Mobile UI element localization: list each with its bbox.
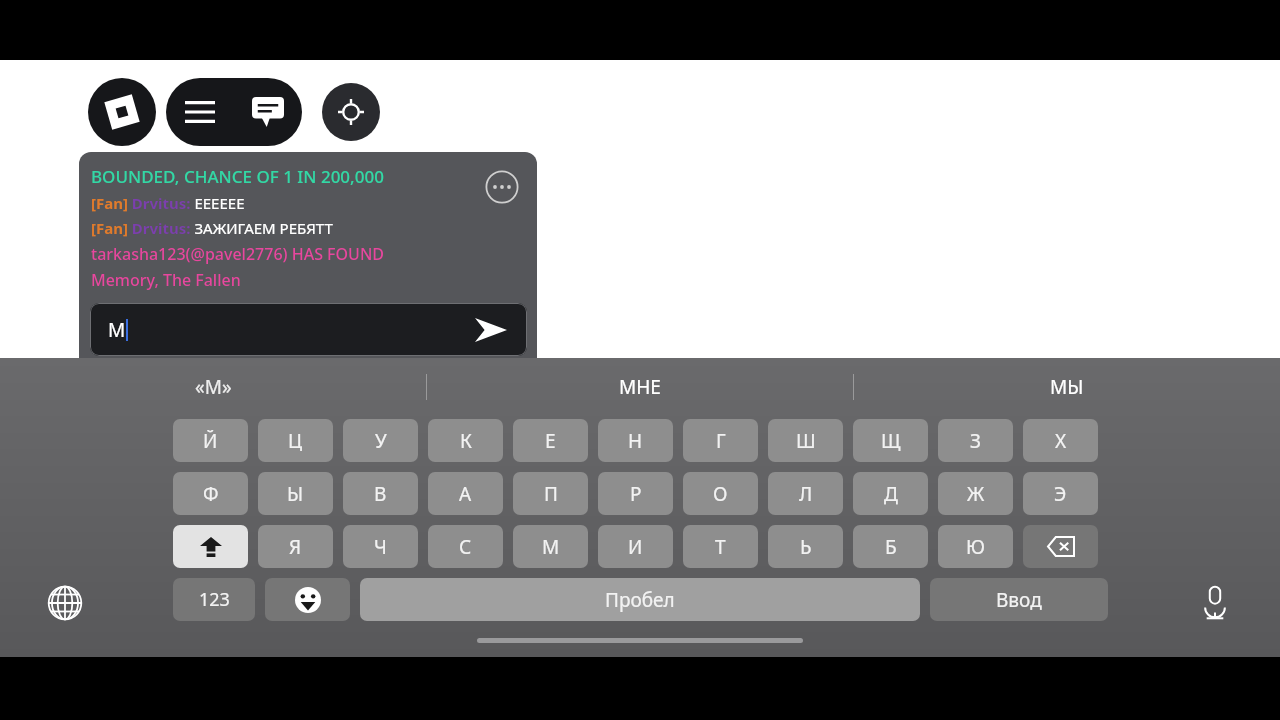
button[interactable]: «М» <box>0 358 426 416</box>
button[interactable]: МНЕ <box>427 358 853 416</box>
button[interactable]: Д <box>853 472 928 515</box>
button[interactable]: Voice input <box>1193 581 1237 625</box>
button[interactable]: П <box>513 472 588 515</box>
button[interactable]: МЫ <box>854 358 1280 416</box>
staticText: BOUNDED, CHANCE OF 1 IN 200,000 <box>91 165 384 188</box>
staticText: [Fan] Drvitus: EEEEEE <box>91 193 245 213</box>
button[interactable]: Chat <box>234 78 302 146</box>
staticText: Х <box>1055 428 1067 454</box>
button[interactable]: М <box>513 525 588 568</box>
button[interactable]: Х <box>1023 419 1098 462</box>
button[interactable]: Roblox menu <box>88 78 156 146</box>
staticText: О <box>713 481 728 507</box>
staticText: Я <box>289 534 302 560</box>
button[interactable]: M <box>90 303 527 356</box>
staticText: Н <box>628 428 643 454</box>
button[interactable]: Ф <box>173 472 248 515</box>
button[interactable]: Г <box>683 419 758 462</box>
staticText: Ввод <box>996 587 1042 613</box>
button[interactable]: З <box>938 419 1013 462</box>
staticText: А <box>459 481 472 507</box>
staticText: Ш <box>796 428 816 454</box>
staticText: Е <box>545 428 556 454</box>
button[interactable]: Ы <box>258 472 333 515</box>
staticText: МЫ <box>1050 374 1084 400</box>
staticText: Ь <box>800 534 812 560</box>
staticText: З <box>970 428 981 454</box>
button[interactable]: Ш <box>768 419 843 462</box>
staticText: Э <box>1054 481 1067 507</box>
staticText: С <box>459 534 472 560</box>
staticText: Т <box>715 534 726 560</box>
staticText: Пробел <box>605 587 675 613</box>
button[interactable]: Ж <box>938 472 1013 515</box>
button[interactable]: Н <box>598 419 673 462</box>
staticText: У <box>375 428 387 454</box>
staticText: Й <box>203 428 218 454</box>
button[interactable]: Б <box>853 525 928 568</box>
staticText: В <box>374 481 387 507</box>
button[interactable]: 123 <box>173 578 255 621</box>
button[interactable]: Ввод <box>930 578 1108 621</box>
button[interactable]: В <box>343 472 418 515</box>
button[interactable] <box>1023 525 1098 568</box>
button[interactable]: Recenter camera <box>322 83 380 141</box>
button[interactable]: Щ <box>853 419 928 462</box>
button[interactable]: Change language <box>43 581 87 625</box>
button[interactable]: Ц <box>258 419 333 462</box>
staticText: М <box>542 534 560 560</box>
button[interactable]: У <box>343 419 418 462</box>
staticText: tarkasha123(@pavel2776) HAS FOUND Memory… <box>91 243 451 291</box>
staticText: Б <box>885 534 897 560</box>
button[interactable]: Ю <box>938 525 1013 568</box>
staticText: Д <box>884 481 898 507</box>
button[interactable] <box>173 525 248 568</box>
button[interactable]: Л <box>768 472 843 515</box>
staticText: Ж <box>967 481 985 507</box>
staticText: Р <box>630 481 642 507</box>
button[interactable]: Й <box>173 419 248 462</box>
staticText: Ч <box>374 534 387 560</box>
button[interactable]: Ч <box>343 525 418 568</box>
button[interactable]: К <box>428 419 503 462</box>
button[interactable]: Р <box>598 472 673 515</box>
staticText: И <box>628 534 643 560</box>
staticText: К <box>460 428 472 454</box>
staticText: [Fan] Drvitus: ЗАЖИГАЕМ РЕБЯТТ <box>91 218 333 238</box>
staticText: П <box>544 481 558 507</box>
button[interactable]: Э <box>1023 472 1098 515</box>
button[interactable]: Я <box>258 525 333 568</box>
staticText: Ц <box>288 428 303 454</box>
staticText: Ю <box>966 534 985 560</box>
button[interactable]: Пробел <box>360 578 920 621</box>
button[interactable]: И <box>598 525 673 568</box>
button[interactable]: Send <box>471 310 511 350</box>
staticText: M <box>108 317 126 343</box>
button[interactable]: Menu <box>166 78 234 146</box>
button[interactable]: Ь <box>768 525 843 568</box>
staticText: Л <box>799 481 813 507</box>
button[interactable] <box>265 578 350 621</box>
button[interactable]: С <box>428 525 503 568</box>
staticText: Ф <box>203 481 219 507</box>
staticText: «М» <box>195 374 232 400</box>
staticText: Ы <box>287 481 304 507</box>
staticText: Г <box>716 428 726 454</box>
button[interactable]: Е <box>513 419 588 462</box>
staticText: Щ <box>881 428 901 454</box>
button[interactable]: More options <box>485 170 519 204</box>
staticText: 123 <box>199 587 230 612</box>
button[interactable]: А <box>428 472 503 515</box>
button[interactable]: Т <box>683 525 758 568</box>
button[interactable]: О <box>683 472 758 515</box>
staticText: МНЕ <box>619 374 661 400</box>
